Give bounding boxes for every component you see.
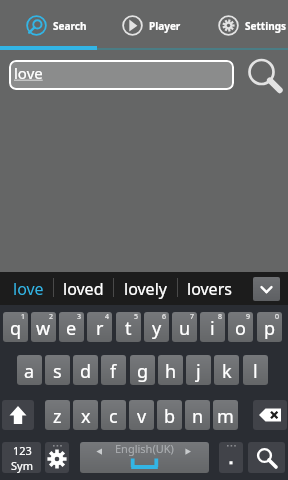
staticText: h bbox=[165, 359, 177, 384]
staticText: Sym bbox=[11, 458, 33, 473]
button[interactable]: Shift bbox=[2, 400, 34, 430]
button[interactable]: Settings bbox=[192, 0, 288, 46]
staticText: m bbox=[217, 404, 234, 429]
staticText: r bbox=[96, 316, 104, 341]
button[interactable]: g bbox=[130, 355, 155, 385]
staticText: 5 bbox=[134, 312, 139, 322]
staticText: w bbox=[36, 316, 51, 341]
staticText: lovers bbox=[187, 278, 232, 300]
button[interactable]: c bbox=[101, 400, 126, 430]
button[interactable]: v bbox=[129, 400, 154, 430]
button[interactable]: k bbox=[214, 355, 239, 385]
button[interactable]: Keyboard settings bbox=[45, 442, 69, 473]
staticText: k bbox=[222, 359, 232, 384]
button[interactable]: j bbox=[186, 355, 211, 385]
button[interactable]: b bbox=[157, 400, 182, 430]
button[interactable]: w bbox=[31, 312, 56, 342]
button[interactable]: n bbox=[185, 400, 210, 430]
button[interactable]: Search bbox=[0, 0, 96, 46]
staticText: Search bbox=[53, 19, 87, 33]
staticText: z bbox=[53, 404, 62, 429]
staticText: b bbox=[164, 404, 176, 429]
staticText: love bbox=[13, 278, 44, 300]
button[interactable]: a bbox=[17, 355, 42, 385]
staticText: 2 bbox=[49, 312, 54, 322]
button[interactable]: q bbox=[3, 312, 28, 342]
button[interactable]: Period bbox=[219, 442, 243, 473]
button[interactable]: Space bbox=[80, 442, 209, 473]
button[interactable]: 123 bbox=[2, 442, 41, 473]
staticText: English(UK) bbox=[115, 442, 174, 456]
staticText: loved bbox=[63, 278, 104, 300]
staticText: 0 bbox=[275, 312, 280, 322]
staticText: 6 bbox=[162, 312, 167, 322]
button[interactable]: t bbox=[116, 312, 141, 342]
button[interactable]: u bbox=[172, 312, 197, 342]
staticText: Settings bbox=[245, 19, 286, 33]
staticText: n bbox=[192, 404, 204, 429]
staticText: s bbox=[53, 359, 62, 384]
staticText: d bbox=[80, 359, 92, 384]
staticText: love bbox=[14, 63, 43, 83]
button[interactable]: o bbox=[228, 312, 253, 342]
button[interactable]: f bbox=[101, 355, 126, 385]
button[interactable]: loved bbox=[56, 272, 111, 305]
button[interactable]: Player bbox=[96, 0, 192, 46]
staticText: y bbox=[152, 316, 162, 341]
staticText: g bbox=[137, 359, 149, 384]
staticText: 8 bbox=[218, 312, 223, 322]
staticText: j bbox=[196, 359, 201, 384]
staticText: f bbox=[110, 359, 117, 384]
staticText: p bbox=[264, 316, 276, 341]
staticText: c bbox=[109, 404, 118, 429]
button[interactable]: Search bbox=[248, 442, 285, 473]
staticText: 3 bbox=[77, 312, 82, 322]
button[interactable]: More suggestions bbox=[245, 272, 288, 305]
staticText: x bbox=[81, 404, 91, 429]
button[interactable]: lovers bbox=[179, 272, 239, 305]
staticText: i bbox=[210, 316, 215, 341]
staticText: l bbox=[253, 359, 258, 384]
button[interactable]: x bbox=[73, 400, 98, 430]
staticText: 4 bbox=[105, 312, 110, 322]
button[interactable]: m bbox=[213, 400, 238, 430]
staticText: t bbox=[125, 316, 132, 341]
button[interactable]: z bbox=[45, 400, 70, 430]
staticText: a bbox=[24, 359, 35, 384]
staticText: u bbox=[179, 316, 191, 341]
button[interactable]: e bbox=[59, 312, 84, 342]
staticText: Player bbox=[149, 19, 181, 33]
button[interactable]: love bbox=[9, 60, 234, 90]
staticText: 1 bbox=[21, 312, 26, 322]
staticText: q bbox=[10, 316, 22, 341]
staticText: 9 bbox=[246, 312, 251, 322]
button[interactable]: love bbox=[0, 272, 56, 305]
button[interactable]: i bbox=[200, 312, 225, 342]
button[interactable]: h bbox=[158, 355, 183, 385]
button[interactable]: Search bbox=[238, 55, 286, 103]
staticText: v bbox=[137, 404, 147, 429]
button[interactable]: d bbox=[73, 355, 98, 385]
staticText: e bbox=[66, 316, 77, 341]
staticText: 123 bbox=[13, 443, 32, 458]
staticText: lovely bbox=[124, 278, 167, 300]
button[interactable]: y bbox=[144, 312, 169, 342]
staticText: o bbox=[235, 316, 246, 341]
button[interactable]: p bbox=[257, 312, 282, 342]
staticText: 7 bbox=[190, 312, 195, 322]
button[interactable]: l bbox=[243, 355, 268, 385]
button[interactable]: s bbox=[45, 355, 70, 385]
button[interactable]: Backspace bbox=[253, 400, 287, 430]
button[interactable]: lovely bbox=[111, 272, 179, 305]
button[interactable]: r bbox=[87, 312, 112, 342]
